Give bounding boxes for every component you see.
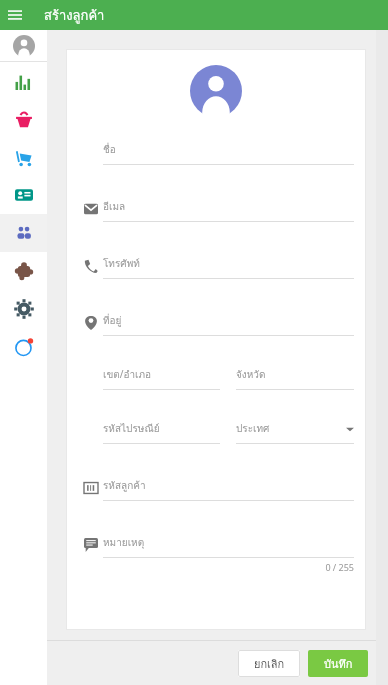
button[interactable]: บันทึก xyxy=(308,650,368,677)
button[interactable]: รหัสไปรษณีย์ xyxy=(103,421,220,444)
button[interactable]: Email xyxy=(78,196,354,253)
staticText: เขต/อำเภอ xyxy=(103,367,220,383)
button[interactable]: Customer code xyxy=(78,475,354,532)
button[interactable]: จังหวัด xyxy=(236,367,354,390)
staticText: ยกเลิก xyxy=(254,655,285,672)
button[interactable]: Sales xyxy=(0,100,47,138)
staticText: ที่อยู่ xyxy=(103,313,122,329)
button[interactable]: Customers xyxy=(0,214,47,252)
button[interactable]: Settings xyxy=(0,290,47,328)
staticText: รหัสลูกค้า xyxy=(103,478,146,494)
staticText: หมายเหตุ xyxy=(103,535,145,551)
button[interactable]: ประเทศ xyxy=(236,421,354,444)
button[interactable]: Account xyxy=(0,30,47,61)
button[interactable]: Delivery xyxy=(0,138,47,176)
staticText: ประเทศ xyxy=(236,421,346,437)
button[interactable]: Address xyxy=(78,310,354,367)
button[interactable]: Cards xyxy=(0,176,47,214)
button[interactable]: Name xyxy=(78,139,354,196)
staticText: อีเมล xyxy=(103,199,126,215)
staticText: โทรศัพท์ xyxy=(103,256,140,272)
staticText: รหัสไปรษณีย์ xyxy=(103,421,220,437)
button[interactable]: เขต/อำเภอ xyxy=(103,367,220,390)
staticText: สร้างลูกค้า xyxy=(44,5,105,26)
button[interactable]: Add-ons xyxy=(0,252,47,290)
staticText: จังหวัด xyxy=(236,367,354,383)
button[interactable]: Menu xyxy=(0,0,30,30)
button[interactable]: Help xyxy=(0,328,47,366)
button[interactable]: Reports xyxy=(0,62,47,100)
button[interactable]: Phone xyxy=(78,253,354,310)
button[interactable]: Note xyxy=(78,532,354,579)
staticText: 0 / 255 xyxy=(78,561,354,573)
button[interactable]: ยกเลิก xyxy=(238,650,300,677)
staticText: ชื่อ xyxy=(103,142,116,158)
staticText: บันทึก xyxy=(324,655,353,672)
